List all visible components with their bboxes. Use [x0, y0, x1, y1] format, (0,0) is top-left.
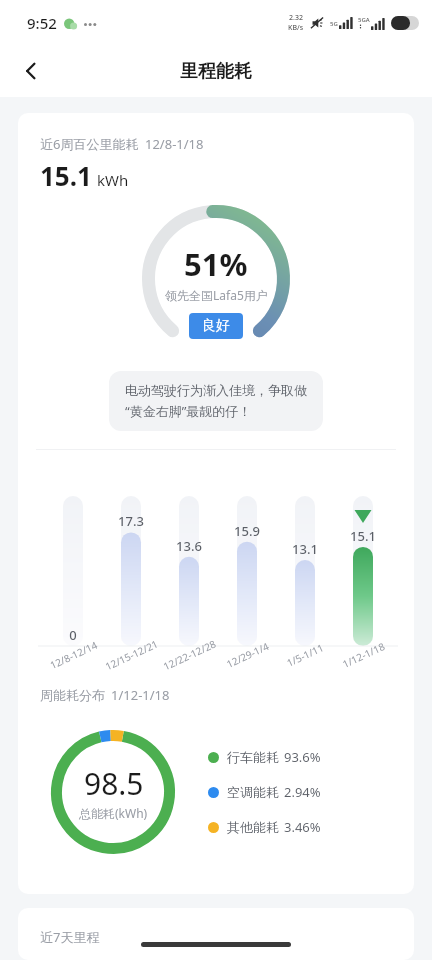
- staticText: 15.1: [40, 158, 92, 193]
- staticText: 电动驾驶行为渐入佳境，争取做 “黄金右脚”最靓的仔！: [125, 382, 307, 420]
- staticText: 12/8-12/14: [47, 638, 99, 672]
- staticText: 领先全国Lafa5用户: [165, 287, 268, 303]
- staticText: 其他能耗: [227, 819, 279, 835]
- staticText: 93.6%: [284, 748, 321, 766]
- staticText: 12/29-1/4: [224, 639, 271, 671]
- staticText: 98.5: [84, 763, 144, 804]
- staticText: 里程能耗: [180, 60, 252, 83]
- button[interactable]: 良好: [189, 313, 243, 339]
- staticText: 51%: [184, 243, 248, 285]
- staticText: 17.3: [118, 512, 144, 530]
- staticText: 1/5-1/11: [284, 640, 326, 670]
- staticText: 9:52: [27, 13, 57, 33]
- staticText: 1/12-1/18: [340, 639, 387, 671]
- staticText: 5GA: [358, 16, 370, 24]
- button[interactable]: Back: [14, 53, 50, 89]
- staticText: 15.1: [350, 527, 376, 545]
- staticText: KB/s: [288, 23, 304, 33]
- staticText: 总能耗(kWh): [79, 805, 148, 821]
- staticText: 12/8-1/18: [145, 135, 204, 153]
- staticText: 近7天里程: [40, 928, 100, 946]
- staticText: 2.94%: [284, 783, 321, 801]
- staticText: 12/15-12/21: [103, 637, 160, 673]
- staticText: 行车能耗: [227, 749, 279, 765]
- staticText: 周能耗分布: [40, 687, 105, 703]
- staticText: 13.6: [176, 537, 202, 555]
- staticText: kWh: [97, 170, 129, 190]
- staticText: 1/12-1/18: [111, 686, 170, 704]
- staticText: 3.46%: [284, 818, 321, 836]
- staticText: 0: [69, 626, 77, 644]
- staticText: 13.1: [292, 540, 318, 558]
- staticText: 近6周百公里能耗: [40, 135, 139, 153]
- staticText: 12/22-12/28: [161, 637, 218, 673]
- staticText: 2.32: [289, 13, 303, 23]
- staticText: 15.9: [234, 522, 260, 540]
- staticText: 5G: [330, 20, 338, 28]
- staticText: 良好: [202, 317, 230, 335]
- staticText: 空调能耗: [227, 784, 279, 800]
